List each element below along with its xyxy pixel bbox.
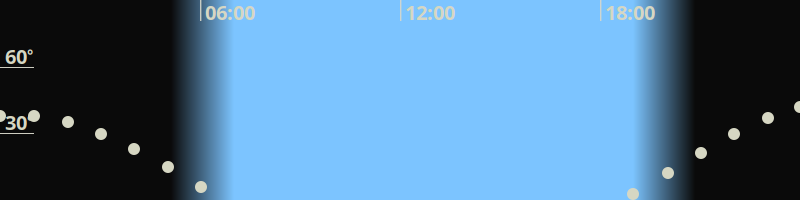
staticText: 12:00 <box>405 0 455 26</box>
staticText: ° <box>27 45 33 64</box>
staticText: 60 <box>5 43 27 70</box>
staticText: 18:00 <box>605 0 655 26</box>
staticText: 06:00 <box>205 0 255 26</box>
staticText: 30 <box>5 109 27 136</box>
staticText: ° <box>27 111 33 130</box>
